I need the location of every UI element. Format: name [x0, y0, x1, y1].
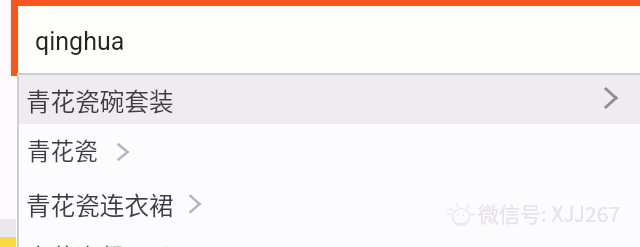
- staticText: 微信号: XJJ267: [478, 198, 621, 228]
- button[interactable]: 青花瓷碗套装: [17, 75, 640, 124]
- other: Refine search: [159, 244, 183, 247]
- staticText: 青花瓷连衣裙: [26, 186, 174, 222]
- button[interactable]: qinghua: [11, 0, 640, 73]
- staticText: qinghua: [35, 27, 125, 56]
- other: Open suggestion: [599, 86, 623, 110]
- button[interactable]: 青花瓷: [17, 124, 640, 175]
- button[interactable]: 青花瓷餐具: [17, 227, 640, 247]
- staticText: 青花瓷: [27, 133, 98, 167]
- button[interactable]: 青花瓷连衣裙: [17, 175, 640, 226]
- staticText: 青花瓷餐具: [26, 238, 149, 247]
- other: Refine search: [183, 192, 207, 216]
- other: Refine search: [111, 140, 135, 164]
- staticText: 青花瓷碗套装: [26, 82, 174, 118]
